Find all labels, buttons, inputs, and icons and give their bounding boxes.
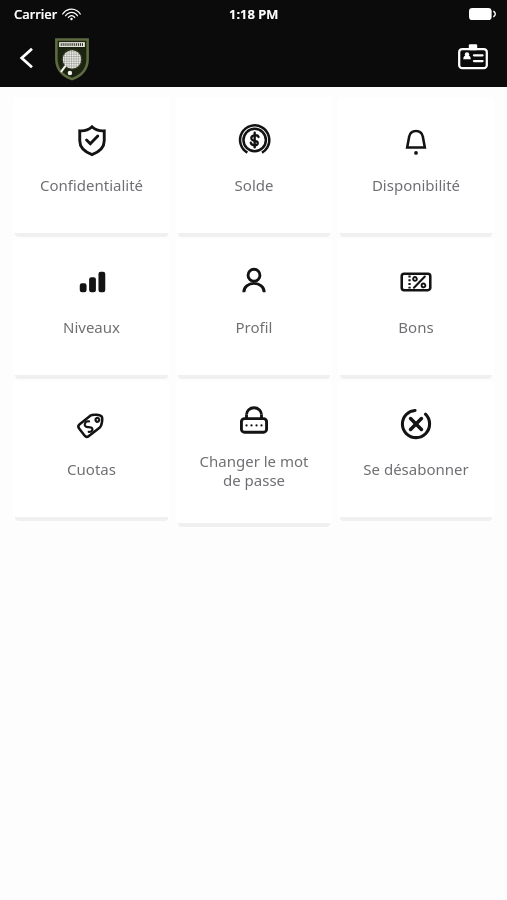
button[interactable]: Bons bbox=[338, 239, 494, 375]
staticText: Se désabonner bbox=[344, 459, 488, 479]
staticText: Confidentialité bbox=[19, 175, 164, 195]
button[interactable]: Se désabonner bbox=[338, 381, 494, 517]
staticText: Solde bbox=[182, 175, 326, 195]
staticText: 1:18 PM bbox=[229, 5, 279, 23]
button[interactable]: Back bbox=[4, 35, 50, 81]
button[interactable]: Membership card bbox=[451, 36, 495, 80]
staticText: Carrier bbox=[14, 5, 58, 23]
staticText: Changer le mot de passe bbox=[182, 451, 326, 490]
button[interactable]: Solde bbox=[176, 97, 332, 233]
button[interactable]: Cuotas bbox=[13, 381, 170, 517]
staticText: Bons bbox=[344, 317, 488, 337]
button[interactable]: Profil bbox=[176, 239, 332, 375]
button[interactable]: Changer le mot de passe bbox=[176, 381, 332, 523]
button[interactable]: Confidentialité bbox=[13, 97, 170, 233]
button[interactable]: Niveaux bbox=[13, 239, 170, 375]
button[interactable]: Urban Padel logo bbox=[46, 32, 98, 84]
staticText: Cuotas bbox=[19, 459, 164, 479]
staticText: Niveaux bbox=[19, 317, 164, 337]
staticText: Profil bbox=[182, 317, 326, 337]
staticText: Disponibilité bbox=[344, 175, 488, 195]
button[interactable]: Disponibilité bbox=[338, 97, 494, 233]
